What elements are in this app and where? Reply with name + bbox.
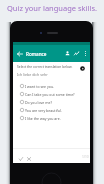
button[interactable]: You are very beautiful. (13, 106, 90, 114)
button[interactable]: Profile (63, 49, 72, 58)
button[interactable]: Skip (24, 154, 33, 163)
staticText: Can I take you out some time? (25, 92, 75, 97)
button[interactable]: I want to see you. (13, 82, 90, 90)
button[interactable]: Play audio (79, 65, 86, 72)
staticText: Do you love me? (25, 100, 52, 105)
staticText: 1/10 (82, 155, 89, 159)
staticText: I want to see you. (25, 84, 54, 89)
button[interactable]: More options (81, 49, 90, 58)
staticText: Select the correct translation below. (17, 64, 73, 68)
button[interactable]: Back (14, 48, 25, 59)
staticText: You are very beautiful. (25, 108, 62, 113)
button[interactable]: Statistics (72, 49, 81, 58)
button[interactable]: I like the way you are. (13, 114, 90, 122)
button[interactable]: Can I take you out some time? (13, 90, 90, 98)
staticText: Romance (26, 51, 47, 57)
staticText: Quiz your language skills. (7, 3, 97, 13)
button[interactable]: Do you love me? (13, 98, 90, 106)
button[interactable]: Check answer (16, 154, 25, 163)
staticText: Ich liebe dich sehr (17, 72, 48, 77)
staticText: I like the way you are. (25, 116, 61, 121)
